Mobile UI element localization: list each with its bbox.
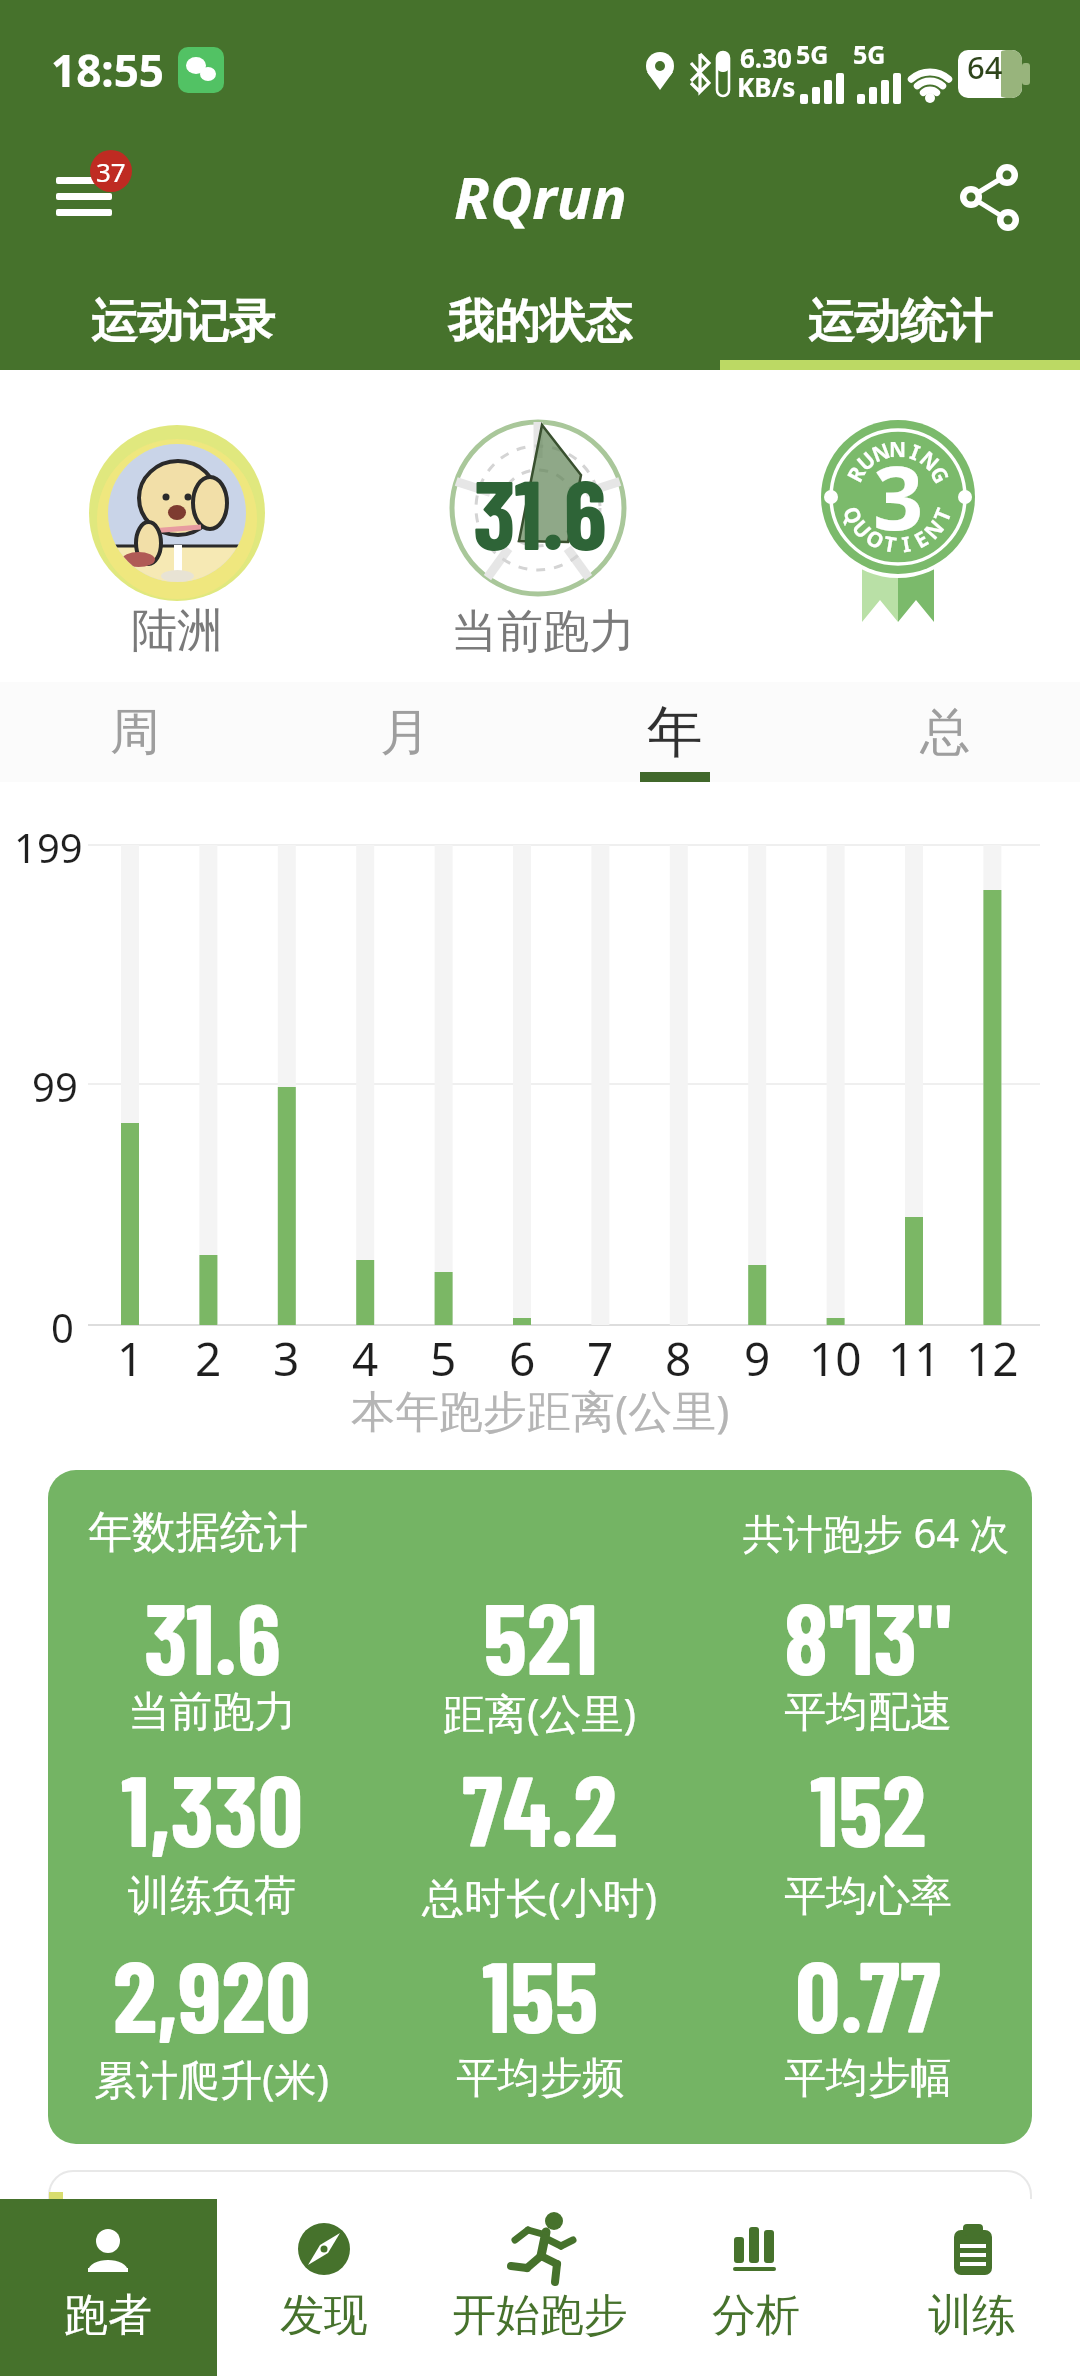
staticText: 64 <box>967 46 1003 86</box>
staticText: 2,920 <box>113 1933 311 2053</box>
staticText: 训练负荷 <box>128 1870 296 1923</box>
staticText: G <box>923 461 956 489</box>
staticText: 平均心率 <box>784 1870 952 1923</box>
staticText: 分析 <box>712 2288 800 2343</box>
staticText: 6 <box>509 1327 536 1383</box>
button[interactable]: 总 <box>810 682 1080 782</box>
staticText: 152 <box>810 1747 927 1867</box>
staticText: 当前跑力 <box>451 603 635 661</box>
staticText: N <box>913 445 946 478</box>
staticText: 周 <box>110 701 160 764</box>
button[interactable]: 运动记录 <box>3 287 363 357</box>
staticText: 1,330 <box>121 1747 303 1867</box>
staticText: 运动记录 <box>91 293 275 351</box>
staticText: 521 <box>483 1575 598 1695</box>
staticText: T <box>927 503 959 526</box>
button[interactable]: 月 <box>270 682 540 782</box>
staticText: R <box>840 461 873 487</box>
button[interactable]: 运动统计 <box>720 287 1080 357</box>
staticText: 年 <box>647 697 703 768</box>
staticText: 训练 <box>928 2288 1016 2343</box>
staticText: 共计跑步 64 次 <box>743 1505 1010 1560</box>
staticText: 我的状态 <box>448 293 632 351</box>
staticText: 当前跑力 <box>128 1686 296 1739</box>
staticText: U <box>851 445 882 477</box>
staticText: 平均步幅 <box>784 2052 952 2105</box>
staticText: 9 <box>744 1327 771 1383</box>
staticText: Q <box>836 502 869 529</box>
button[interactable] <box>89 425 265 601</box>
staticText: 2 <box>195 1327 222 1383</box>
button[interactable]: 我的状态 <box>360 287 720 357</box>
staticText: N <box>868 436 895 469</box>
staticText: 累计爬升(米) <box>94 2050 330 2107</box>
staticText: 开始跑步 <box>452 2288 628 2343</box>
staticText: 12 <box>966 1327 1019 1383</box>
staticText: 总时长(小时) <box>422 1868 658 1925</box>
staticText: 本年跑步距离(公里) <box>351 1380 730 1440</box>
staticText: 3 <box>873 436 924 556</box>
staticText: E <box>909 524 934 555</box>
button[interactable] <box>935 155 1045 240</box>
staticText: 发现 <box>280 2288 368 2343</box>
staticText: 74.2 <box>462 1747 618 1867</box>
button[interactable] <box>864 2199 1080 2376</box>
staticText: T <box>881 529 899 560</box>
staticText: 3 <box>273 1327 300 1383</box>
staticText: O <box>861 523 890 556</box>
staticText: N <box>918 513 951 546</box>
staticText: 1 <box>117 1327 144 1383</box>
staticText: 跑者 <box>64 2288 152 2343</box>
staticText: 距离(公里) <box>443 1684 637 1741</box>
staticText: U <box>845 514 878 545</box>
staticText: 18:55 <box>51 40 165 100</box>
staticText: 0.77 <box>795 1933 941 2053</box>
button[interactable] <box>0 2199 217 2376</box>
staticText: 7 <box>587 1327 614 1383</box>
staticText: 5G <box>796 37 829 67</box>
button[interactable] <box>46 150 146 240</box>
staticText: 平均步频 <box>456 2052 624 2105</box>
button[interactable]: 周 <box>0 682 270 782</box>
staticText: 155 <box>482 1933 599 2053</box>
staticText: 99 <box>32 1059 78 1109</box>
staticText: I <box>900 529 913 559</box>
staticText: 5 <box>430 1327 457 1383</box>
staticText: 总 <box>920 701 970 764</box>
button[interactable]: 年 <box>540 682 810 782</box>
button[interactable] <box>432 2199 648 2376</box>
staticText: 运动统计 <box>808 293 992 351</box>
staticText: I <box>906 437 925 468</box>
staticText: 0 <box>51 1300 74 1350</box>
staticText: KB/s <box>737 69 796 103</box>
button[interactable] <box>216 2199 432 2376</box>
staticText: 年数据统计 <box>88 1505 308 1560</box>
staticText: 6.30 <box>740 40 792 74</box>
staticText: 31.6 <box>473 452 607 570</box>
staticText: 陆洲 <box>131 602 223 660</box>
button[interactable] <box>48 1470 1032 2144</box>
staticText: 5G <box>853 37 886 67</box>
staticText: 4 <box>352 1327 379 1383</box>
staticText: 37 <box>96 154 126 189</box>
staticText: 平均配速 <box>784 1686 952 1739</box>
staticText: N <box>889 435 907 464</box>
staticText: 199 <box>14 820 83 870</box>
staticText: RQrun <box>454 157 627 236</box>
staticText: 10 <box>809 1327 862 1383</box>
staticText: 8'13" <box>784 1575 952 1695</box>
staticText: 11 <box>888 1327 941 1383</box>
staticText: 月 <box>380 701 430 764</box>
staticText: 31.6 <box>144 1575 281 1695</box>
staticText: 8 <box>665 1327 692 1383</box>
button[interactable] <box>648 2199 864 2376</box>
